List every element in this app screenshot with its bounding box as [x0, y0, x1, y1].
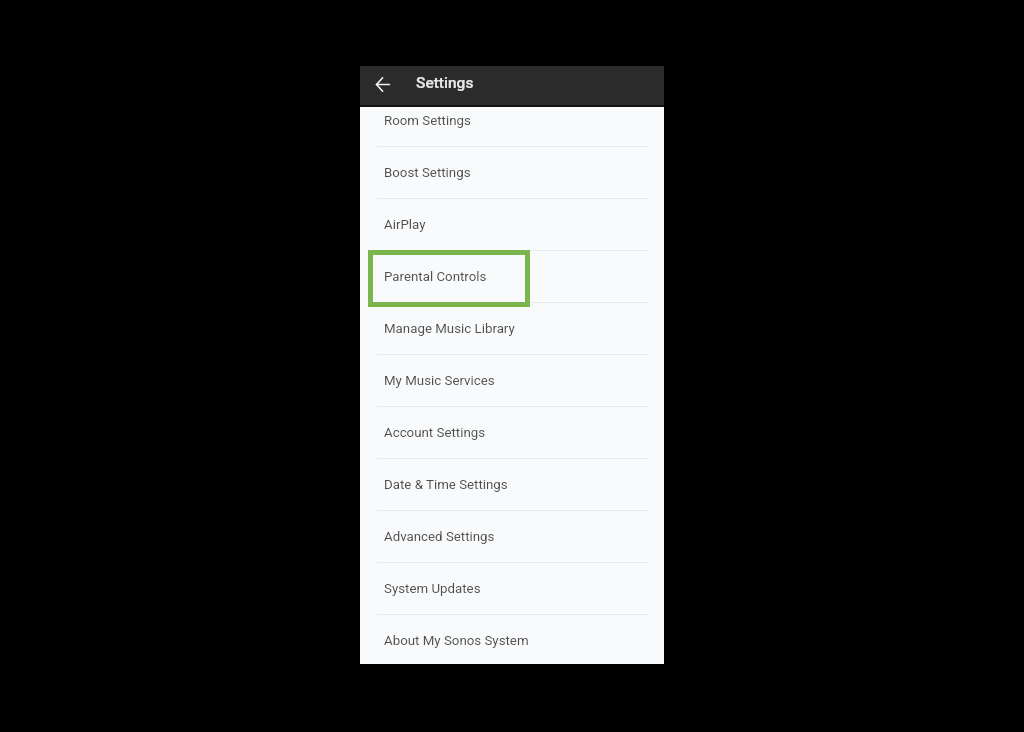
staticText: Manage Music Library: [384, 321, 515, 337]
button[interactable]: Parental Controls: [360, 251, 664, 303]
staticText: Parental Controls: [384, 269, 487, 285]
button[interactable]: Date & Time Settings: [360, 459, 664, 511]
staticText: Boost Settings: [384, 165, 471, 181]
button[interactable]: My Music Services: [360, 355, 664, 407]
button[interactable]: System Updates: [360, 563, 664, 615]
button[interactable]: Boost Settings: [360, 147, 664, 199]
staticText: Account Settings: [384, 425, 486, 441]
button[interactable]: Account Settings: [360, 407, 664, 459]
button[interactable]: AirPlay: [360, 199, 664, 251]
staticText: Date & Time Settings: [384, 477, 508, 493]
staticText: My Music Services: [384, 373, 495, 389]
button[interactable]: Advanced Settings: [360, 511, 664, 563]
button[interactable]: Manage Music Library: [360, 303, 664, 355]
button[interactable]: Room Settings: [360, 106, 664, 147]
staticText: About My Sonos System: [384, 633, 529, 649]
button[interactable]: About My Sonos System: [360, 615, 664, 664]
staticText: Room Settings: [384, 113, 471, 129]
staticText: AirPlay: [384, 217, 426, 233]
staticText: Settings: [416, 74, 474, 92]
button[interactable]: Back: [364, 66, 402, 106]
staticText: System Updates: [384, 581, 481, 597]
staticText: Advanced Settings: [384, 529, 495, 545]
